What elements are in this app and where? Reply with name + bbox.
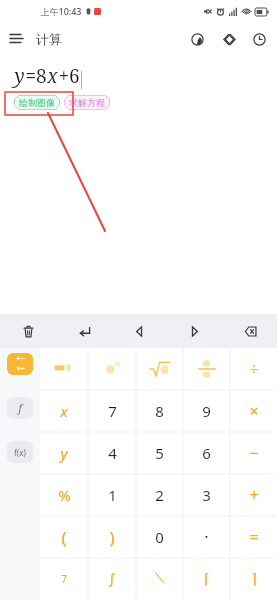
staticText: y: [14, 63, 25, 89]
button[interactable]: 7: [88, 390, 136, 432]
button[interactable]: Backspace: [222, 314, 277, 348]
staticText: 计算: [36, 31, 62, 47]
staticText: 7: [61, 572, 67, 586]
staticText: ÷: [249, 358, 259, 380]
button[interactable]: −: [230, 432, 277, 474]
staticText: %: [58, 485, 71, 505]
button[interactable]: [183, 348, 230, 390]
staticText: x: [47, 63, 58, 89]
staticText: f(x): [14, 447, 26, 458]
button[interactable]: History: [245, 23, 273, 55]
button[interactable]: ÷: [230, 348, 277, 390]
button[interactable]: f(x): [7, 441, 33, 463]
button[interactable]: =: [230, 516, 277, 558]
button[interactable]: Night mode: [181, 23, 213, 55]
button[interactable]: Basic operators: [7, 353, 33, 375]
staticText: y: [60, 443, 68, 463]
staticText: ·: [204, 526, 209, 548]
staticText: 3: [202, 485, 211, 505]
button[interactable]: ⌈: [183, 558, 230, 600]
button[interactable]: [40, 348, 88, 390]
staticText: ∫: [108, 571, 116, 587]
staticText: +−: [16, 354, 25, 364]
button[interactable]: 8: [136, 390, 183, 432]
button[interactable]: ⟍: [136, 558, 183, 600]
staticText: 5: [155, 443, 164, 463]
button[interactable]: ×: [230, 390, 277, 432]
button[interactable]: Convert: [213, 23, 245, 55]
button[interactable]: 5: [136, 432, 183, 474]
button[interactable]: x: [40, 390, 88, 432]
staticText: 0: [155, 527, 164, 547]
staticText: +6: [58, 63, 80, 89]
staticText: f: [18, 401, 22, 415]
button[interactable]: [88, 348, 136, 390]
button[interactable]: ): [88, 516, 136, 558]
button[interactable]: 求解方程: [64, 95, 110, 110]
staticText: ): [109, 526, 115, 549]
button[interactable]: Move left: [112, 314, 167, 348]
staticText: ×÷: [16, 364, 25, 374]
staticText: 8: [155, 401, 164, 421]
button[interactable]: Enter: [56, 314, 112, 348]
staticText: ⌉: [251, 571, 257, 587]
staticText: ⌈: [204, 571, 210, 587]
button[interactable]: 3: [183, 474, 230, 516]
button[interactable]: 9: [183, 390, 230, 432]
button[interactable]: Clear: [0, 314, 56, 348]
button[interactable]: f: [7, 397, 33, 419]
staticText: =: [249, 526, 259, 548]
staticText: 7: [108, 401, 117, 421]
staticText: +: [249, 484, 259, 506]
staticText: 4: [108, 443, 117, 463]
button[interactable]: 绘制图像: [14, 95, 60, 110]
staticText: 6: [202, 443, 211, 463]
button[interactable]: ⌉: [230, 558, 277, 600]
button[interactable]: 7: [40, 558, 88, 600]
staticText: ×: [249, 400, 259, 422]
staticText: 绘制图像: [19, 97, 55, 108]
staticText: 9: [202, 401, 211, 421]
staticText: (: [61, 526, 67, 549]
staticText: x: [60, 401, 68, 421]
button[interactable]: Menu: [0, 22, 33, 55]
staticText: 2: [155, 485, 164, 505]
staticText: 1: [108, 485, 117, 505]
button[interactable]: 2: [136, 474, 183, 516]
staticText: −: [249, 442, 259, 464]
staticText: ⟍: [155, 572, 165, 586]
button[interactable]: (: [40, 516, 88, 558]
button[interactable]: ·: [183, 516, 230, 558]
button[interactable]: y: [40, 432, 88, 474]
button[interactable]: 0: [136, 516, 183, 558]
button[interactable]: %: [40, 474, 88, 516]
button[interactable]: [136, 348, 183, 390]
button[interactable]: 1: [88, 474, 136, 516]
button[interactable]: +: [230, 474, 277, 516]
button[interactable]: ∫: [88, 558, 136, 600]
button[interactable]: 4: [88, 432, 136, 474]
button[interactable]: 6: [183, 432, 230, 474]
staticText: 求解方程: [69, 97, 105, 108]
button[interactable]: Move right: [167, 314, 222, 348]
staticText: =8: [25, 63, 47, 89]
staticText: 上午10:43: [40, 5, 82, 17]
